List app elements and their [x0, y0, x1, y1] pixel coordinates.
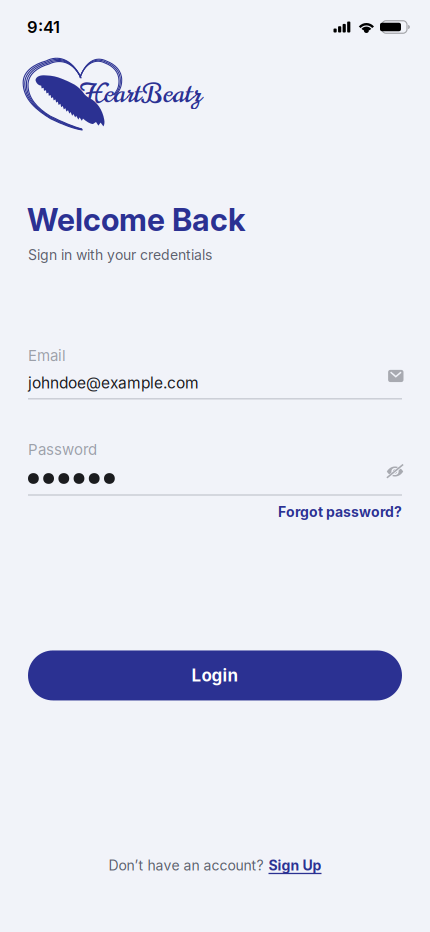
- button[interactable]: Sign Up: [268, 857, 321, 874]
- staticText: Password: [28, 440, 97, 458]
- staticText: Login: [191, 665, 238, 686]
- staticText: Sign Up: [268, 857, 321, 874]
- staticText: 9:41: [27, 17, 60, 37]
- staticText: Forgot password?: [278, 503, 402, 520]
- staticText: johndoe@example.com: [28, 374, 199, 392]
- button[interactable]: Forgot password?: [278, 503, 402, 520]
- button[interactable]: Login: [28, 650, 402, 700]
- staticText: Email: [28, 346, 66, 364]
- staticText: Sign in with your credentials: [28, 246, 212, 263]
- staticText: HeartBeatz: [80, 75, 202, 113]
- button[interactable]: Show password: [386, 464, 403, 478]
- staticText: Don’t have an account?: [108, 857, 263, 874]
- staticText: Welcome Back: [27, 201, 246, 238]
